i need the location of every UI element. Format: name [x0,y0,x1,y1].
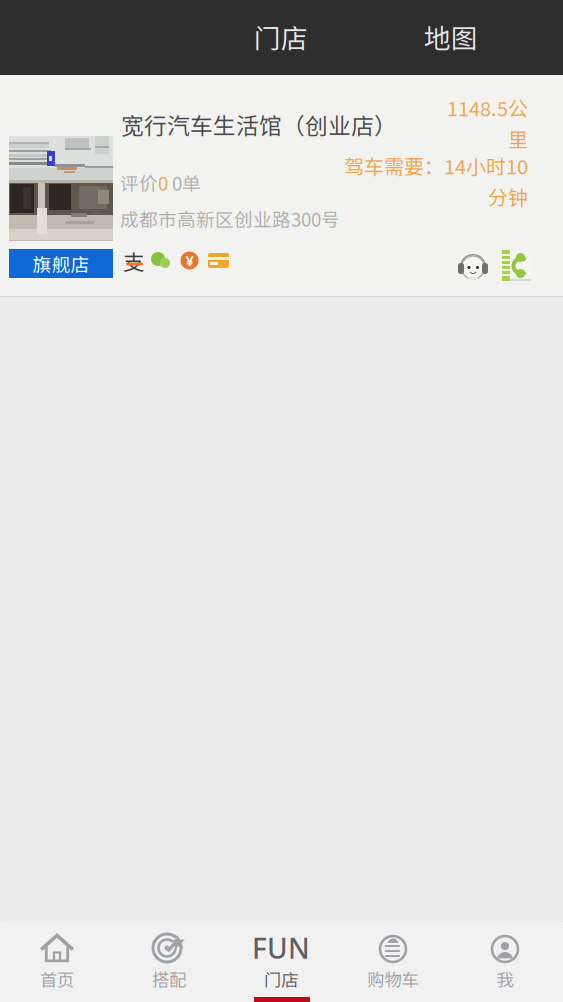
staticText: FUN [252,929,310,967]
staticText: 旗舰店 [32,250,89,277]
staticText: 成都市高新区创业路300号 [120,205,340,232]
button[interactable]: 旗舰店 [9,249,113,278]
staticText: 地图 [424,17,478,56]
staticText: 1148.5公 [447,93,528,122]
staticText: 分钟 [488,182,528,211]
button[interactable]: 电话 [501,250,531,281]
staticText: 宽行汽车生活馆（创业店） [121,108,397,141]
staticText: 0 [158,169,168,196]
button[interactable]: 搭配 [113,921,225,1002]
staticText: 我 [496,966,513,992]
staticText: 门店 [254,17,308,56]
staticText: 搭配 [152,966,186,992]
button[interactable]: 地图 [401,0,501,73]
staticText: 评价 [120,169,158,196]
staticText: 首页 [40,966,74,992]
button[interactable]: 客服 [458,252,488,281]
staticText: 0单 [168,169,201,196]
staticText: 支 [123,245,141,263]
staticText: 驾车需要：14小时10 [344,151,528,180]
button[interactable]: 门店 [231,0,331,73]
staticText: 门店 [264,966,298,992]
button[interactable]: 我 [449,921,561,1002]
staticText: ¥ [185,251,193,270]
button[interactable]: 首页 [1,921,113,1002]
staticText: 里 [508,124,528,153]
staticText: 购物车 [367,966,418,992]
button[interactable]: 购物车 [337,921,449,1002]
button[interactable]: FUN [225,921,337,1002]
button[interactable] [9,136,113,240]
